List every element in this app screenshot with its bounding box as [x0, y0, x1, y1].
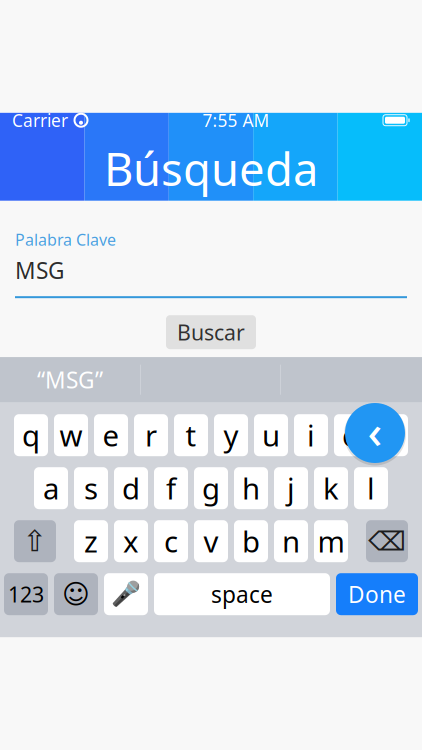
- button[interactable]: “MSG”: [0, 357, 140, 402]
- button[interactable]: 123: [4, 573, 48, 615]
- button[interactable]: c: [154, 520, 188, 562]
- staticText: n: [282, 522, 300, 561]
- button[interactable]: Delete: [366, 520, 408, 562]
- staticText: 🎤: [111, 580, 141, 608]
- staticText: l: [367, 469, 375, 508]
- staticText: c: [164, 522, 178, 561]
- staticText: y: [223, 416, 238, 455]
- staticText: Buscar: [177, 318, 245, 346]
- staticText: e: [102, 416, 119, 455]
- button[interactable]: s: [74, 467, 108, 509]
- staticText: a: [43, 469, 59, 508]
- staticText: g: [202, 469, 220, 508]
- staticText: w: [59, 416, 82, 455]
- button[interactable]: f: [154, 467, 188, 509]
- staticText: u: [262, 416, 280, 455]
- button[interactable]: Buscar: [166, 315, 256, 349]
- button[interactable]: g: [194, 467, 228, 509]
- button[interactable]: y: [214, 414, 248, 456]
- staticText: Palabra Clave: [15, 229, 116, 250]
- staticText: m: [317, 522, 344, 561]
- staticText: 7:55 AM: [202, 109, 269, 132]
- staticText: v: [203, 522, 218, 561]
- button[interactable]: q: [14, 414, 48, 456]
- staticText: q: [22, 416, 40, 455]
- button[interactable]: m: [314, 520, 348, 562]
- button[interactable]: k: [314, 467, 348, 509]
- staticText: s: [84, 469, 98, 508]
- staticText: Done: [348, 579, 406, 609]
- staticText: ⌫: [368, 526, 406, 556]
- button[interactable]: e: [94, 414, 128, 456]
- staticText: MSG: [15, 255, 65, 285]
- button[interactable]: h: [234, 467, 268, 509]
- button[interactable]: u: [254, 414, 288, 456]
- button[interactable]: w: [54, 414, 88, 456]
- button[interactable]: b: [234, 520, 268, 562]
- button[interactable]: z: [74, 520, 108, 562]
- button[interactable]: t: [174, 414, 208, 456]
- staticText: ⇧: [22, 524, 47, 558]
- staticText: 123: [8, 580, 44, 608]
- staticText: “MSG”: [37, 365, 103, 395]
- button[interactable]: v: [194, 520, 228, 562]
- button[interactable]: ☺: [54, 573, 98, 615]
- staticText: x: [123, 522, 139, 561]
- staticText: r: [145, 416, 157, 455]
- staticText: p: [382, 416, 400, 455]
- button[interactable]: Shift: [14, 520, 56, 562]
- staticText: k: [323, 469, 339, 508]
- button[interactable]: a: [34, 467, 68, 509]
- button[interactable]: Back: [342, 400, 408, 466]
- staticText: d: [122, 469, 140, 508]
- staticText: z: [84, 522, 98, 561]
- staticText: o: [342, 416, 360, 455]
- button[interactable]: l: [354, 467, 388, 509]
- staticText: b: [242, 522, 260, 561]
- staticText: ‹: [367, 401, 382, 461]
- button[interactable]: p: [374, 414, 408, 456]
- button[interactable]: space: [154, 573, 330, 615]
- staticText: j: [287, 469, 295, 508]
- button[interactable]: n: [274, 520, 308, 562]
- button[interactable]: d: [114, 467, 148, 509]
- staticText: f: [166, 469, 176, 508]
- button[interactable]: o: [334, 414, 368, 456]
- staticText: ☺: [62, 579, 90, 609]
- button[interactable]: i: [294, 414, 328, 456]
- button[interactable]: 🎤: [104, 573, 148, 615]
- button[interactable]: Done: [336, 573, 418, 615]
- staticText: space: [211, 579, 273, 609]
- button[interactable]: x: [114, 520, 148, 562]
- button[interactable]: r: [134, 414, 168, 456]
- staticText: Carrier: [12, 109, 68, 132]
- staticText: Búsqueda: [104, 138, 318, 198]
- staticText: t: [185, 416, 196, 455]
- staticText: h: [242, 469, 260, 508]
- staticText: i: [307, 416, 315, 455]
- button[interactable]: j: [274, 467, 308, 509]
